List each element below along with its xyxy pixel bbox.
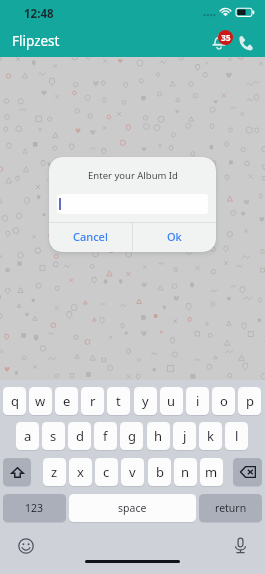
staticText: Enter your Album Id [88,169,178,182]
staticText: q [11,392,19,410]
button[interactable]: 123 [3,494,66,522]
staticText: m [205,463,218,481]
button[interactable]: w [29,387,52,415]
button[interactable]: v [121,458,144,486]
staticText: 123 [25,501,44,515]
staticText: h [154,427,163,445]
staticText: return [215,501,247,515]
button[interactable]: Cancel [49,222,132,251]
staticText: o [220,392,228,410]
staticText: a [24,427,32,445]
staticText: c [103,463,110,481]
staticText: r [90,392,96,410]
staticText: f [103,427,108,445]
staticText: Cancel [73,229,108,244]
button[interactable]: n [174,458,197,486]
staticText: i [196,392,200,410]
button[interactable]: r [81,387,104,415]
button[interactable]: x [69,458,92,486]
staticText: p [246,392,254,410]
staticText: x [77,463,84,481]
button[interactable]: c [95,458,118,486]
staticText: 35 [221,32,231,44]
button[interactable] [57,194,208,214]
staticText: Flipzest [12,32,60,50]
button[interactable]: e [55,387,78,415]
button[interactable]: h [147,422,170,450]
button[interactable]: g [120,422,143,450]
button[interactable]: Emoji [16,536,35,555]
staticText: v [129,463,136,481]
button[interactable]: l [225,422,248,450]
staticText: b [156,463,164,481]
staticText: k [207,427,214,445]
button[interactable]: Backspace [233,458,262,486]
button[interactable]: Dictate [231,536,250,555]
button[interactable]: m [200,458,223,486]
button[interactable]: q [3,387,26,415]
button[interactable]: i [186,387,209,415]
button[interactable]: Ok [133,222,216,251]
staticText: y [142,392,149,410]
staticText: Ok [167,229,182,244]
button[interactable]: y [134,387,157,415]
staticText: t [116,392,121,410]
staticText: g [128,427,136,445]
button[interactable]: t [107,387,130,415]
button[interactable]: j [173,422,196,450]
button[interactable]: Shift [3,458,31,486]
button[interactable]: k [199,422,222,450]
button[interactable]: d [68,422,91,450]
button[interactable]: a [16,422,39,450]
button[interactable]: p [238,387,261,415]
staticText: s [50,427,57,445]
button[interactable]: z [43,458,66,486]
button[interactable]: Call [234,31,256,53]
staticText: d [76,427,84,445]
button[interactable]: b [148,458,171,486]
staticText: 12:48 [24,6,54,22]
staticText: e [63,392,71,410]
staticText: j [183,427,187,445]
button[interactable]: space [69,494,196,522]
staticText: l [235,427,239,445]
staticText: w [35,392,46,410]
button[interactable]: s [42,422,65,450]
staticText: z [51,463,58,481]
staticText: u [167,392,176,410]
button[interactable]: Notifications [207,30,231,54]
button[interactable]: u [160,387,183,415]
button[interactable]: return [199,494,262,522]
staticText: n [181,463,190,481]
button[interactable]: o [212,387,235,415]
staticText: space [118,501,147,515]
button[interactable]: f [94,422,117,450]
